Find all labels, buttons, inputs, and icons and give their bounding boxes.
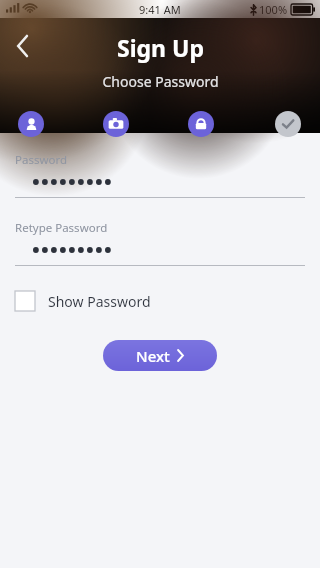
staticText: Next — [136, 346, 170, 366]
button[interactable]: Photo step — [103, 111, 129, 137]
staticText: Show Password — [48, 292, 151, 311]
button[interactable] — [0, 174, 320, 190]
button[interactable]: Next — [103, 340, 217, 371]
staticText: Retype Password — [15, 220, 108, 236]
button[interactable]: Show Password — [15, 286, 151, 316]
staticText: Choose Password — [102, 72, 219, 91]
staticText: 9:41 AM — [139, 2, 181, 17]
button[interactable]: Password step — [188, 111, 214, 137]
button[interactable]: Back — [6, 29, 40, 63]
staticText: 100% — [259, 2, 288, 17]
button[interactable] — [0, 242, 320, 258]
button[interactable]: Confirm step — [275, 111, 301, 137]
button[interactable]: Profile step — [18, 111, 44, 137]
staticText: Password — [15, 152, 68, 168]
staticText: Sign Up — [117, 32, 204, 63]
